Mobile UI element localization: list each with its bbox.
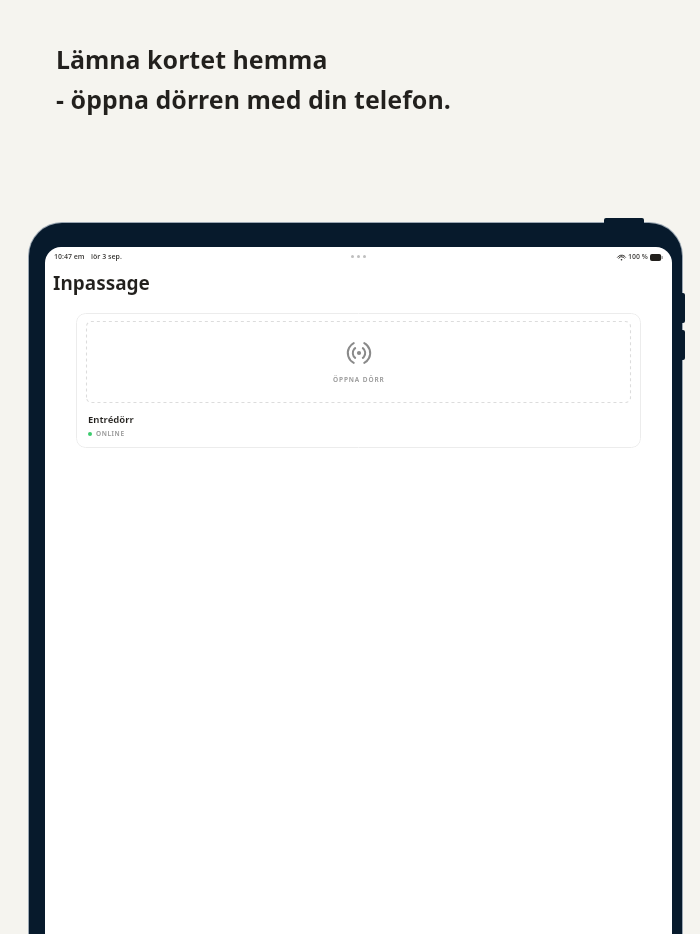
staticText: Inpassage	[53, 270, 150, 296]
staticText: Entrédörr	[88, 413, 134, 426]
staticText: lör 3 sep.	[91, 252, 122, 262]
button[interactable]: Öppna dörr	[86, 321, 631, 403]
staticText: Lämna kortet hemma	[56, 42, 328, 76]
staticText: 10:47 em	[54, 252, 85, 262]
staticText: - öppna dörren med din telefon.	[56, 82, 451, 116]
staticText: ÖPPNA DÖRR	[333, 375, 385, 384]
staticText: ONLINE	[96, 429, 125, 438]
staticText: 100 %	[628, 252, 648, 262]
